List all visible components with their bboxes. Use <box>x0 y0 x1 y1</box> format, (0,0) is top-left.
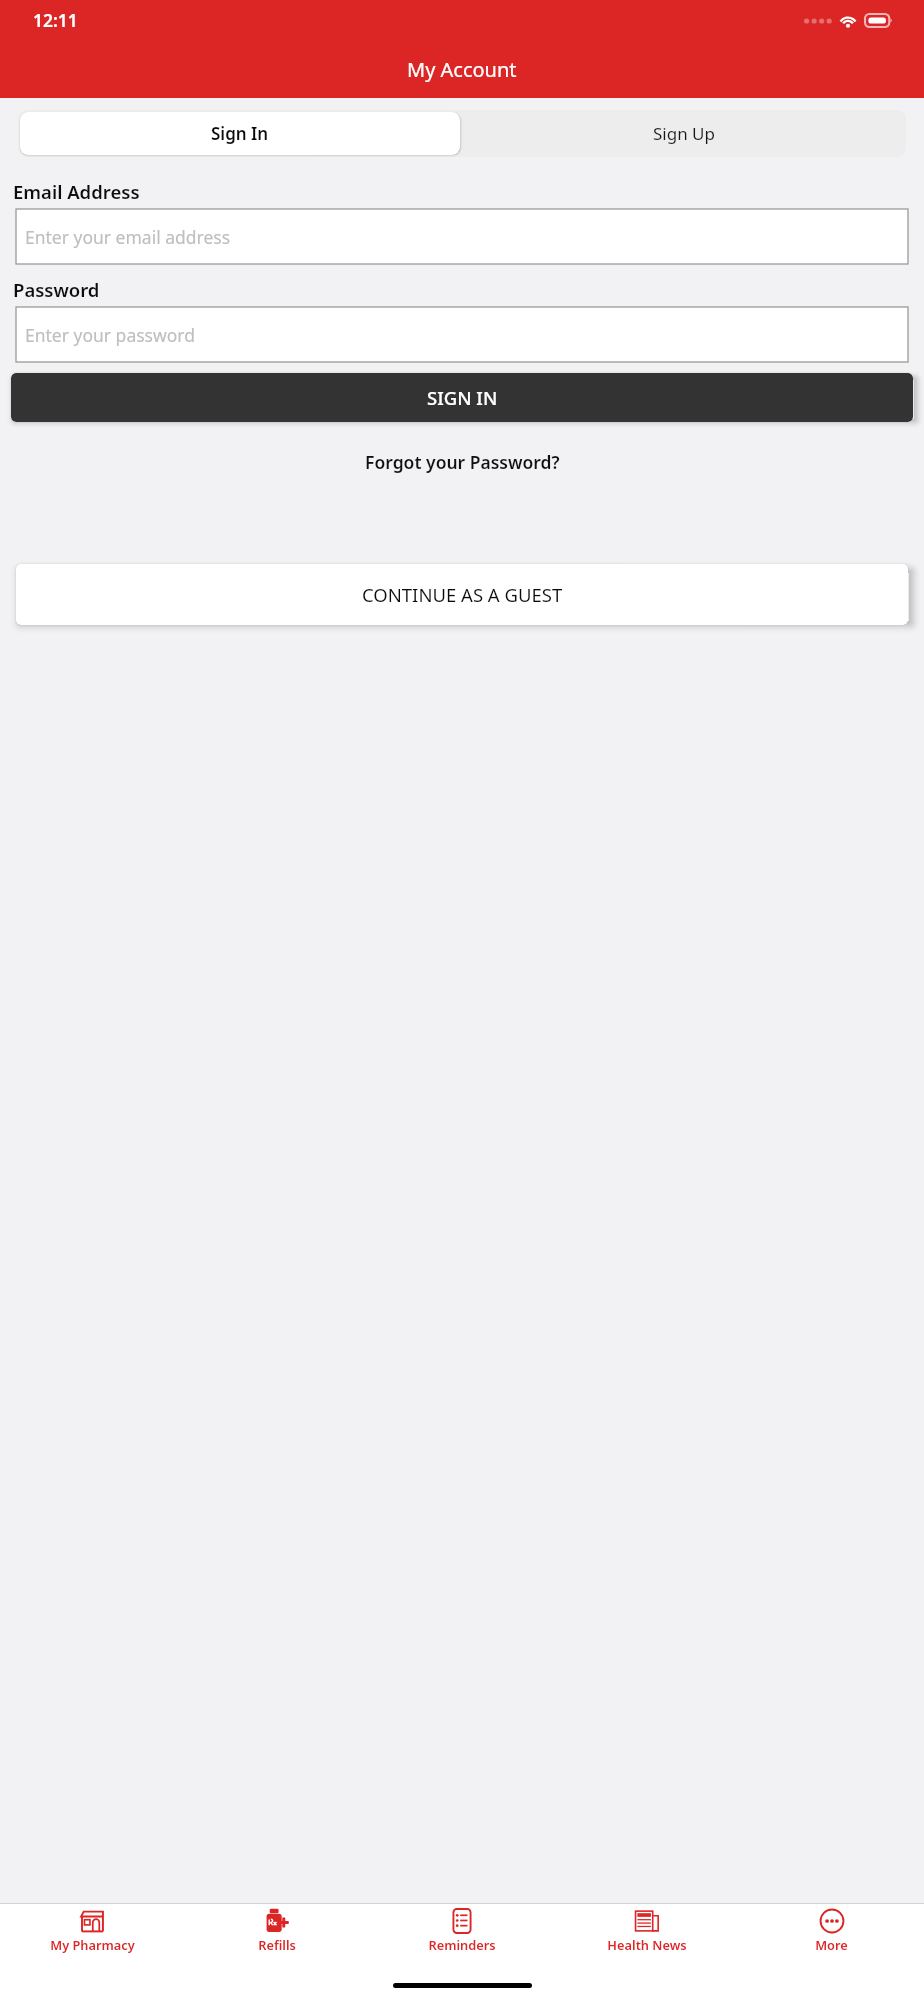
staticText: Sign Up <box>653 122 715 145</box>
button[interactable]: Reminders <box>369 1904 554 1956</box>
staticText: More <box>815 1936 848 1953</box>
button[interactable]: CONTINUE AS A GUEST <box>16 564 908 625</box>
staticText: Refills <box>258 1936 296 1953</box>
staticText: Forgot your Password? <box>365 450 560 474</box>
staticText: Sign In <box>211 122 269 145</box>
staticText: Enter your email address <box>25 225 231 249</box>
staticText: Health News <box>607 1936 687 1953</box>
button[interactable]: Enter your password <box>16 307 908 362</box>
button[interactable]: Sign Up <box>462 110 906 157</box>
button[interactable]: Sign In <box>20 112 460 155</box>
staticText: Email Address <box>13 179 140 204</box>
button[interactable]: Forgot your Password? <box>355 446 570 478</box>
staticText: Reminders <box>428 1936 496 1953</box>
button[interactable]: SIGN IN <box>11 373 913 422</box>
staticText: Enter your password <box>25 323 195 347</box>
staticText: Password <box>13 277 100 302</box>
staticText: My Account <box>407 56 517 83</box>
button[interactable]: Refills <box>184 1904 369 1956</box>
button[interactable]: More <box>739 1904 924 1956</box>
button[interactable]: Enter your email address <box>16 209 908 264</box>
staticText: My Pharmacy <box>50 1936 135 1953</box>
staticText: 12:11 <box>33 8 78 32</box>
staticText: CONTINUE AS A GUEST <box>362 582 563 607</box>
staticText: SIGN IN <box>427 385 498 410</box>
button[interactable]: Health News <box>554 1904 739 1956</box>
button[interactable]: My Pharmacy <box>0 1904 184 1956</box>
